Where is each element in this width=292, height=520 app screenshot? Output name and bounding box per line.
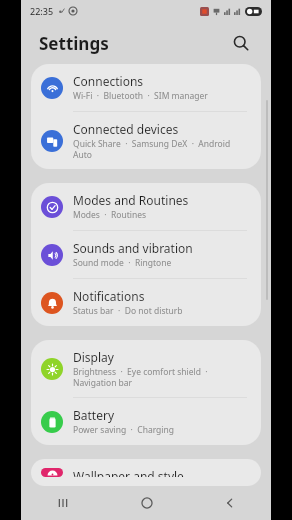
button[interactable]: Search (227, 29, 255, 57)
button[interactable]: Display (31, 340, 261, 397)
button[interactable]: Recents (21, 486, 105, 520)
staticText: Modes and Routines (73, 192, 189, 208)
staticText: Wallpaper and style (73, 468, 184, 477)
staticText: Modes · Routines (73, 209, 147, 221)
staticText: Battery (73, 407, 115, 423)
staticText: Display (73, 349, 114, 365)
staticText: Sound mode · Ringtone (73, 257, 172, 269)
button[interactable]: Wallpaper and style (31, 459, 261, 486)
staticText: Quick Share · Samsung DeX · Android Auto (73, 138, 231, 160)
button[interactable]: Modes and Routines (31, 183, 261, 230)
button[interactable]: Home (105, 486, 188, 520)
staticText: Settings (39, 32, 109, 55)
button[interactable]: Battery (31, 398, 261, 445)
button[interactable]: Back (188, 486, 271, 520)
staticText: 22:35 (30, 5, 54, 17)
staticText: Sounds and vibration (73, 240, 193, 256)
button[interactable]: Connections (31, 64, 261, 111)
staticText: Status bar · Do not disturb (73, 305, 183, 317)
staticText: Connections (73, 73, 144, 89)
staticText: Power saving · Charging (73, 424, 174, 436)
button[interactable]: Sounds and vibration (31, 231, 261, 278)
staticText: Connected devices (73, 121, 179, 137)
staticText: Brightness · Eye comfort shield · Naviga… (73, 366, 208, 388)
button[interactable]: Connected devices (31, 112, 261, 169)
staticText: Wi-Fi · Bluetooth · SIM manager (73, 90, 208, 102)
button[interactable]: Notifications (31, 279, 261, 326)
staticText: Notifications (73, 288, 145, 304)
